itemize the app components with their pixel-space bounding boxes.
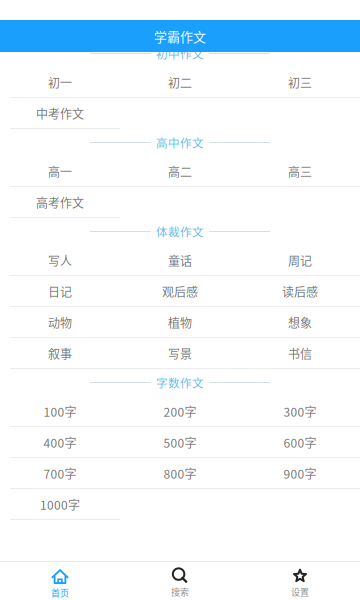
staticText: 想象 — [288, 314, 312, 331]
button[interactable]: 设置 — [240, 562, 360, 600]
button[interactable]: 首页 — [0, 562, 120, 600]
button[interactable]: 读后感 — [240, 276, 360, 307]
staticText: 中考作文 — [36, 105, 84, 122]
staticText: 900字 — [283, 465, 316, 482]
button[interactable]: 高考作文 — [0, 187, 120, 218]
button[interactable]: 1000字 — [0, 489, 120, 520]
button[interactable]: 日记 — [0, 276, 120, 307]
button[interactable]: 400字 — [0, 427, 120, 458]
staticText: 写景 — [168, 345, 192, 362]
button[interactable]: 书信 — [240, 338, 360, 369]
button[interactable]: 叙事 — [0, 338, 120, 369]
staticText: 设置 — [291, 585, 309, 598]
button[interactable]: 700字 — [0, 458, 120, 489]
button[interactable]: 800字 — [120, 458, 240, 489]
button[interactable]: 中考作文 — [0, 98, 120, 129]
button[interactable]: 初三 — [240, 67, 360, 98]
staticText: 童话 — [168, 252, 192, 269]
staticText: 学霸作文 — [154, 27, 206, 45]
staticText: 首页 — [51, 586, 69, 599]
staticText: 初一 — [48, 74, 72, 91]
button[interactable]: 童话 — [120, 245, 240, 276]
staticText: 高中作文 — [156, 134, 204, 151]
button[interactable]: 写人 — [0, 245, 120, 276]
button[interactable]: 植物 — [120, 307, 240, 338]
staticText: 写人 — [48, 252, 72, 269]
button[interactable]: 观后感 — [120, 276, 240, 307]
button[interactable]: 初二 — [120, 67, 240, 98]
button[interactable]: 300字 — [240, 396, 360, 427]
staticText: 初二 — [168, 74, 192, 91]
button[interactable]: 想象 — [240, 307, 360, 338]
staticText: 搜索 — [171, 585, 189, 598]
staticText: 字数作文 — [156, 374, 204, 391]
staticText: 书信 — [288, 345, 312, 362]
button[interactable]: 搜索 — [120, 562, 240, 600]
button[interactable]: 高一 — [0, 156, 120, 187]
staticText: 高三 — [288, 163, 312, 180]
staticText: 观后感 — [162, 283, 198, 300]
staticText: 叙事 — [48, 345, 72, 362]
button[interactable]: 高二 — [120, 156, 240, 187]
staticText: 1000字 — [40, 496, 80, 513]
staticText: 高考作文 — [36, 194, 84, 211]
staticText: 700字 — [43, 465, 76, 482]
staticText: 400字 — [43, 434, 76, 451]
button[interactable]: 500字 — [120, 427, 240, 458]
staticText: 植物 — [168, 314, 192, 331]
staticText: 初中作文 — [156, 45, 204, 62]
staticText: 高一 — [48, 163, 72, 180]
staticText: 800字 — [163, 465, 196, 482]
staticText: 周记 — [288, 252, 312, 269]
button[interactable]: 高三 — [240, 156, 360, 187]
staticText: 日记 — [48, 283, 72, 300]
button[interactable]: 900字 — [240, 458, 360, 489]
button[interactable]: 周记 — [240, 245, 360, 276]
staticText: 高二 — [168, 163, 192, 180]
button[interactable]: 初一 — [0, 67, 120, 98]
button[interactable]: 动物 — [0, 307, 120, 338]
button[interactable]: 600字 — [240, 427, 360, 458]
staticText: 300字 — [283, 403, 316, 420]
button[interactable]: 写景 — [120, 338, 240, 369]
staticText: 动物 — [48, 314, 72, 331]
button[interactable]: 200字 — [120, 396, 240, 427]
staticText: 200字 — [163, 403, 196, 420]
staticText: 初三 — [288, 74, 312, 91]
staticText: 500字 — [163, 434, 196, 451]
staticText: 100字 — [43, 403, 76, 420]
staticText: 600字 — [283, 434, 316, 451]
button[interactable]: 100字 — [0, 396, 120, 427]
staticText: 读后感 — [282, 283, 318, 300]
staticText: 体裁作文 — [156, 223, 204, 240]
